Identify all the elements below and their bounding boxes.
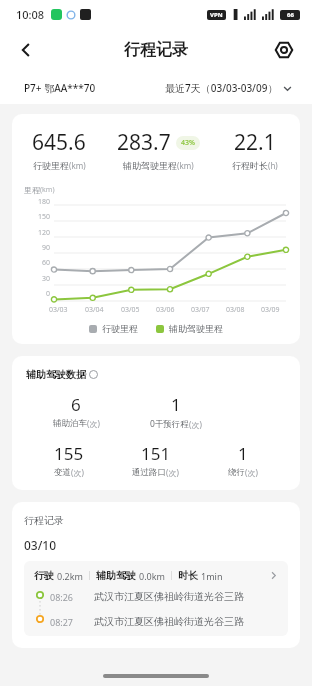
staticText: 03/07 bbox=[191, 305, 210, 315]
staticText: 0.2km bbox=[57, 570, 83, 582]
staticText: 283.7 bbox=[117, 128, 171, 157]
staticText: 辅助驾驶里程 bbox=[169, 323, 223, 334]
staticText: 武汉市江夏区佛祖岭街道光谷三路 bbox=[94, 615, 244, 628]
staticText: 辅助驾驶 bbox=[96, 569, 136, 582]
staticText: 0干预行程 bbox=[150, 418, 189, 430]
staticText: 03/03 bbox=[49, 305, 68, 315]
staticText: 03/09 bbox=[261, 305, 280, 315]
staticText: 通过路口 bbox=[132, 467, 166, 478]
staticText: 行程记录 bbox=[24, 514, 64, 527]
staticText: 645.6 bbox=[32, 128, 86, 157]
staticText: 30 bbox=[24, 274, 50, 284]
button[interactable]: 返回 bbox=[6, 30, 46, 70]
staticText: 辅助泊车 bbox=[53, 418, 87, 429]
staticText: 08:26 bbox=[50, 591, 74, 603]
staticText: (h) bbox=[268, 160, 278, 171]
staticText: 180 bbox=[24, 197, 50, 207]
staticText: 最近7天（03/03-03/09） bbox=[165, 81, 278, 95]
staticText: 1 bbox=[171, 393, 181, 416]
staticText: 行驶里程 bbox=[102, 323, 138, 334]
staticText: 行程时长 bbox=[232, 160, 268, 171]
staticText: 时长 bbox=[178, 569, 198, 582]
staticText: 155 bbox=[54, 442, 84, 465]
staticText: (次) bbox=[87, 418, 100, 429]
staticText: 1min bbox=[201, 570, 223, 582]
staticText: 150 bbox=[24, 212, 50, 222]
staticText: 变道 bbox=[54, 467, 71, 478]
staticText: 03/06 bbox=[156, 305, 175, 315]
staticText: VPN bbox=[210, 11, 223, 19]
staticText: 03/08 bbox=[226, 305, 245, 315]
staticText: 绕行 bbox=[228, 467, 245, 478]
staticText: 辅助驾驶数据 bbox=[26, 368, 86, 381]
staticText: 行驶 bbox=[34, 569, 54, 582]
staticText: (次) bbox=[245, 467, 258, 478]
staticText: (次) bbox=[166, 467, 179, 478]
staticText: 辅助驾驶里程 bbox=[123, 160, 177, 171]
staticText: 里程 bbox=[24, 185, 40, 195]
staticText: 90 bbox=[24, 243, 50, 253]
staticText: 6 bbox=[71, 393, 81, 416]
staticText: 43% bbox=[181, 138, 195, 148]
staticText: 0.0km bbox=[139, 570, 165, 582]
staticText: 66 bbox=[287, 11, 294, 19]
staticText: 行驶里程 bbox=[33, 160, 69, 171]
staticText: (km) bbox=[40, 185, 55, 195]
staticText: 03/05 bbox=[121, 305, 140, 315]
staticText: P7+ 鄂AA***70 bbox=[24, 81, 96, 95]
staticText: 0 bbox=[24, 289, 50, 299]
staticText: 03/04 bbox=[85, 305, 104, 315]
staticText: 武汉市江夏区佛祖岭街道光谷三路 bbox=[94, 590, 244, 603]
staticText: 10:08 bbox=[16, 7, 45, 22]
staticText: 60 bbox=[24, 258, 50, 268]
button[interactable]: 最近7天（03/03-03/09） bbox=[165, 81, 292, 95]
staticText: (次) bbox=[189, 419, 202, 430]
button[interactable]: P7+ 鄂AA***70 bbox=[24, 81, 96, 95]
staticText: 03/10 bbox=[24, 537, 57, 553]
staticText: 08:27 bbox=[50, 616, 74, 628]
button[interactable]: 设置 bbox=[264, 30, 304, 70]
staticText: 151 bbox=[141, 442, 171, 465]
button[interactable]: 行驶 bbox=[24, 561, 288, 636]
staticText: 22.1 bbox=[234, 128, 276, 157]
staticText: 1 bbox=[238, 442, 248, 465]
staticText: 120 bbox=[24, 228, 50, 238]
staticText: (km) bbox=[177, 160, 194, 171]
staticText: (次) bbox=[71, 467, 84, 478]
staticText: 行程记录 bbox=[124, 40, 188, 60]
staticText: (km) bbox=[69, 160, 86, 171]
